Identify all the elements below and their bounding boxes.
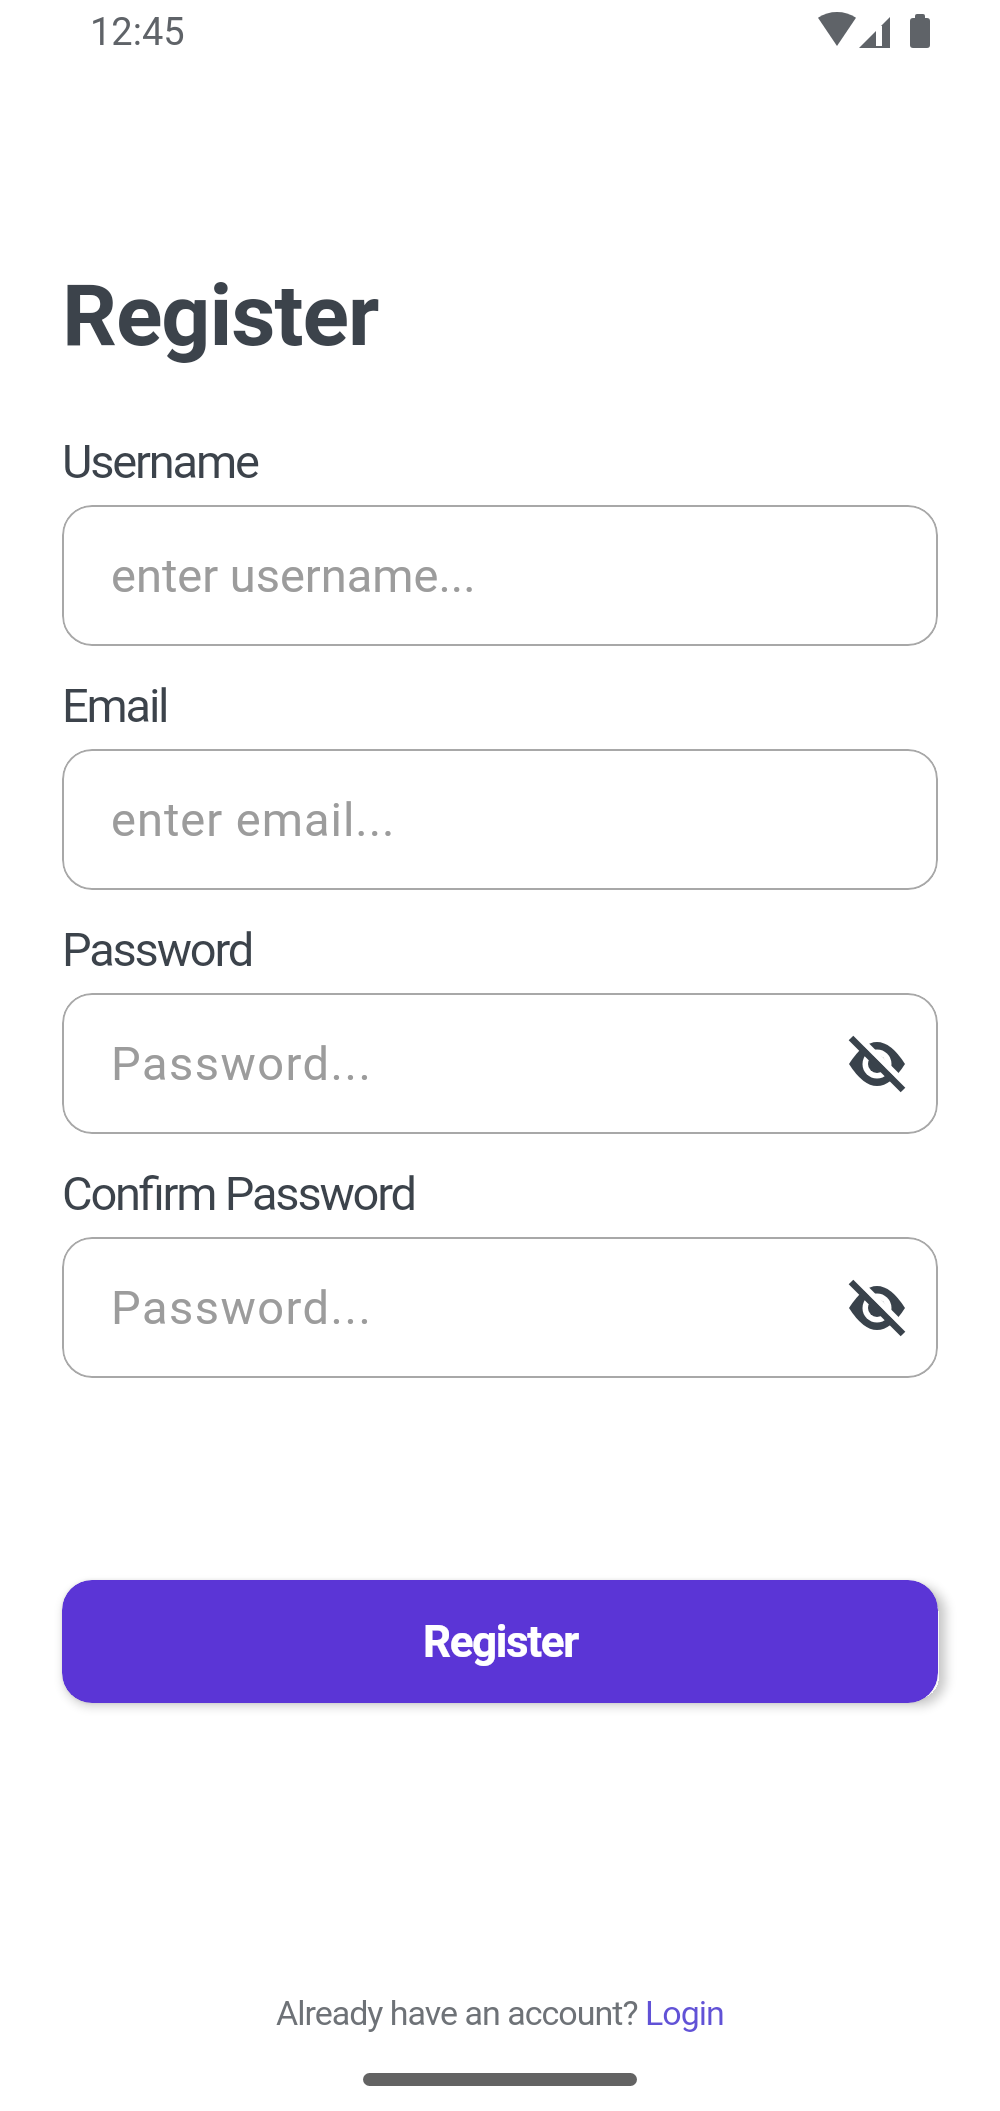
staticText: Email (62, 678, 168, 733)
staticText: Username (62, 434, 258, 489)
button[interactable]: Password... (62, 1237, 938, 1378)
staticText: Password... (111, 1280, 373, 1335)
button[interactable]: enter username... (62, 505, 938, 646)
staticText: Register (423, 1616, 578, 1668)
staticText: Confirm Password (62, 1166, 415, 1221)
staticText: Password... (111, 1036, 373, 1091)
staticText: 12:45 (90, 10, 185, 55)
staticText: enter email... (111, 792, 396, 847)
staticText: Password (62, 922, 252, 977)
button[interactable]: Register (62, 1580, 938, 1703)
button[interactable]: Login (645, 1993, 724, 2033)
staticText: Register (62, 265, 379, 366)
button[interactable]: Password... (62, 993, 938, 1134)
staticText: enter username... (111, 548, 476, 603)
staticText: Already have an account? (276, 1993, 645, 2033)
button[interactable]: enter email... (62, 749, 938, 890)
